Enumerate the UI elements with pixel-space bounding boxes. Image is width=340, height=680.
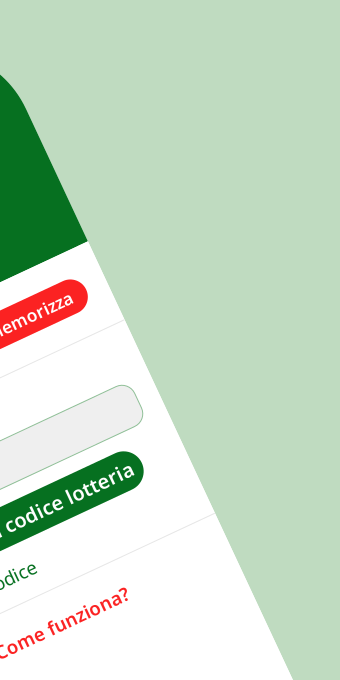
staticText: I miei scontrini [22, 181, 263, 224]
staticText: Inserisci un codice lotteria [55, 460, 315, 487]
staticText: Come funziona? [111, 573, 258, 597]
staticText: 1234 5678 845 [38, 403, 169, 428]
button[interactable]: Inserisci un codice lotteria [45, 454, 325, 494]
staticText: Scansiona il codice [22, 509, 186, 534]
button[interactable]: Come funziona? [0, 551, 340, 619]
staticText: Codice lotteria [22, 355, 156, 382]
